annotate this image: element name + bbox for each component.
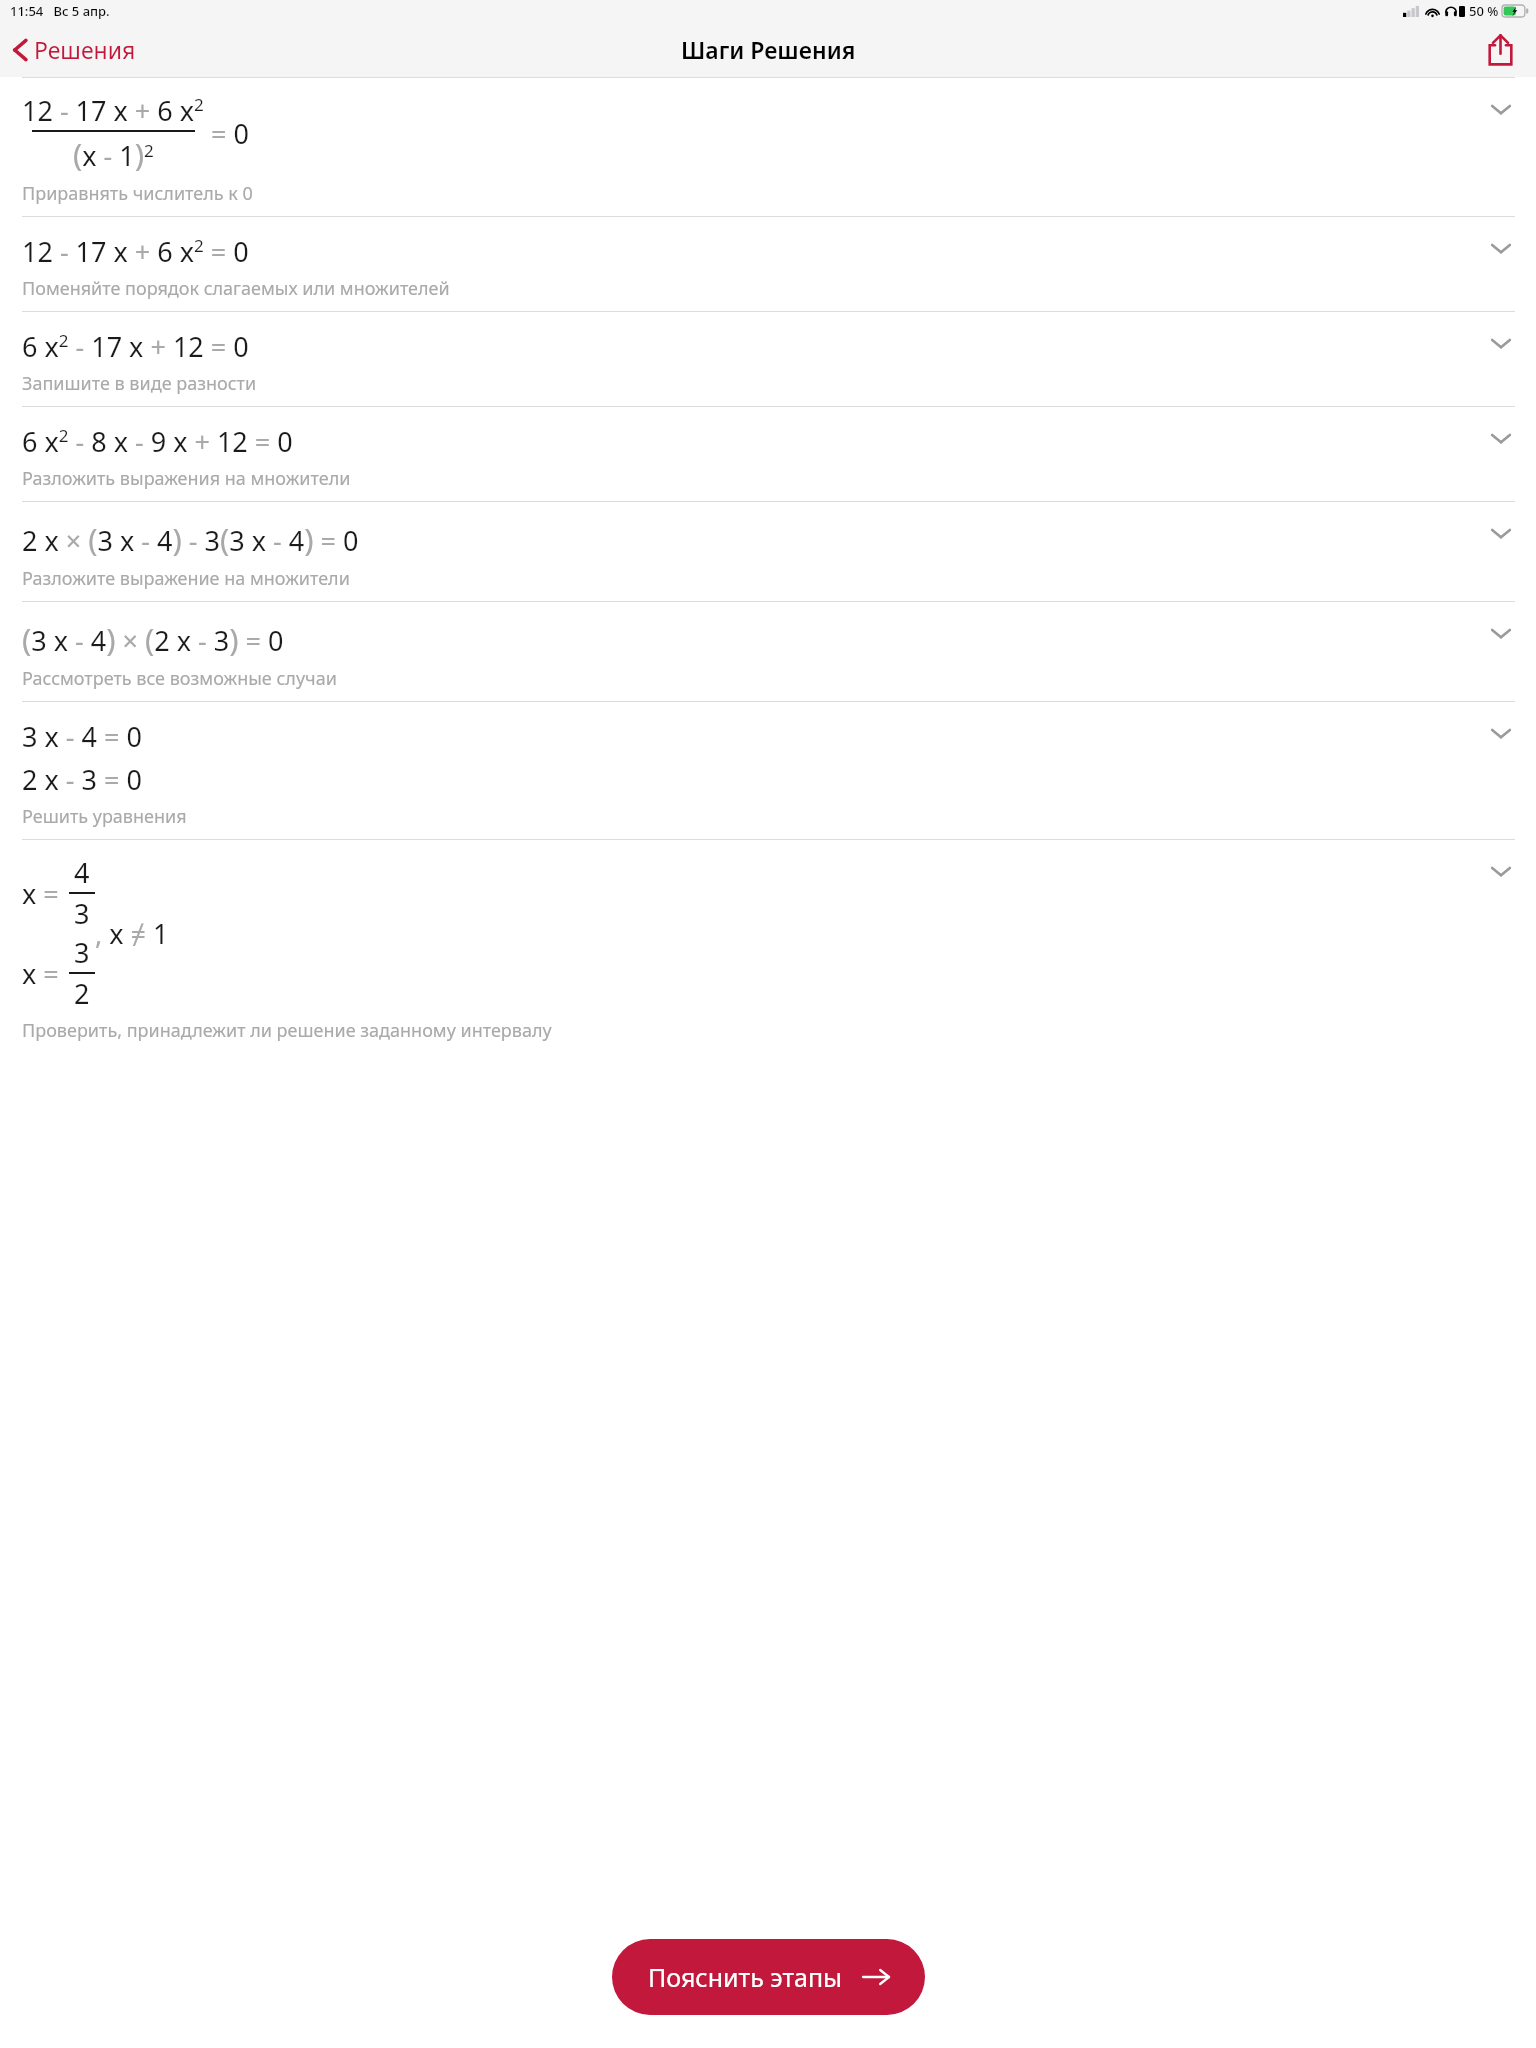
button[interactable]: 12 - 17 x + 6 x2 bbox=[0, 78, 1536, 216]
other: Развернуть шаг bbox=[1488, 520, 1514, 546]
other: Развернуть шаг bbox=[1488, 235, 1514, 261]
staticText: Рассмотреть все возможные случаи bbox=[22, 666, 337, 691]
button[interactable]: 12 - 17 x + 6 x2 = 0 bbox=[0, 217, 1536, 311]
staticText: x = bbox=[22, 955, 66, 992]
staticText: 4 bbox=[74, 854, 90, 891]
staticText: Разложите выражение на множители bbox=[22, 566, 350, 591]
staticText: Решить уравнения bbox=[22, 804, 187, 829]
staticText: 2 x - 3 = 0 bbox=[22, 761, 142, 798]
staticText: Разложить выражения на множители bbox=[22, 466, 351, 491]
button[interactable]: x = bbox=[0, 840, 1536, 1051]
staticText: 3 x - 4 = 0 bbox=[22, 718, 142, 755]
button[interactable]: 6 x2 - 17 x + 12 = 0 bbox=[0, 312, 1536, 406]
staticText: 2 x × (3 x - 4) - 3(3 x - 4) = 0 bbox=[22, 518, 359, 560]
button[interactable]: Решения bbox=[8, 30, 140, 69]
staticText: , x ≠ 1 bbox=[95, 915, 169, 952]
staticText: (x - 1)2 bbox=[73, 133, 154, 175]
staticText: 50 % bbox=[1469, 2, 1499, 20]
button[interactable]: (3 x - 4) × (2 x - 3) = 0 bbox=[0, 602, 1536, 701]
staticText: Пояснить этапы bbox=[648, 1960, 843, 1994]
staticText: 3 bbox=[74, 895, 90, 932]
staticText: Приравнять числитель к 0 bbox=[22, 181, 253, 206]
staticText: 2 bbox=[74, 975, 90, 1012]
staticText: (3 x - 4) × (2 x - 3) = 0 bbox=[22, 618, 284, 660]
button[interactable]: 6 x2 - 8 x - 9 x + 12 = 0 bbox=[0, 407, 1536, 501]
staticText: 6 x2 - 17 x + 12 = 0 bbox=[22, 328, 249, 365]
staticText: = 0 bbox=[204, 115, 249, 152]
other: Развернуть шаг bbox=[1488, 96, 1514, 122]
button[interactable]: Пояснить этапы bbox=[612, 1939, 925, 2015]
other: Развернуть шаг bbox=[1488, 858, 1514, 884]
staticText: 3 bbox=[74, 934, 90, 971]
staticText: 12 - 17 x + 6 x2 = 0 bbox=[22, 233, 249, 270]
staticText: Запишите в виде разности bbox=[22, 371, 257, 396]
staticText: 12 - 17 x + 6 x2 bbox=[22, 92, 204, 129]
staticText: 6 x2 - 8 x - 9 x + 12 = 0 bbox=[22, 423, 293, 460]
button[interactable]: Поделиться bbox=[1481, 27, 1520, 72]
staticText: Шаги Решения bbox=[681, 34, 856, 65]
other: Развернуть шаг bbox=[1488, 330, 1514, 356]
staticText: 11:54 Вс 5 апр. bbox=[10, 2, 110, 20]
other: Развернуть шаг bbox=[1488, 620, 1514, 646]
staticText: Поменяйте порядок слагаемых или множител… bbox=[22, 276, 450, 301]
staticText: x = bbox=[22, 875, 66, 912]
button[interactable]: 2 x × (3 x - 4) - 3(3 x - 4) = 0 bbox=[0, 502, 1536, 601]
other: Развернуть шаг bbox=[1488, 425, 1514, 451]
other: Развернуть шаг bbox=[1488, 720, 1514, 746]
staticText: Проверить, принадлежит ли решение заданн… bbox=[22, 1018, 552, 1043]
button[interactable]: 3 x - 4 = 0 bbox=[0, 702, 1536, 839]
staticText: Решения bbox=[34, 34, 136, 65]
